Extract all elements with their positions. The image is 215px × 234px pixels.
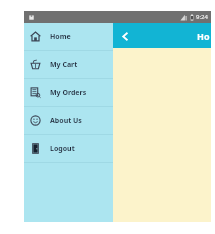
- button[interactable]: About Us: [24, 107, 113, 134]
- button[interactable]: My Orders: [24, 79, 113, 106]
- staticText: About Us: [50, 116, 82, 126]
- button[interactable]: My Cart: [24, 51, 113, 78]
- staticText: Logout: [50, 144, 75, 154]
- staticText: 9:24: [196, 13, 208, 21]
- staticText: Home: [50, 32, 71, 42]
- button[interactable]: Back: [117, 28, 133, 44]
- staticText: My Orders: [50, 88, 87, 98]
- button[interactable]: Logout: [24, 135, 113, 162]
- staticText: Ho: [197, 30, 210, 42]
- button[interactable]: Home: [24, 23, 113, 50]
- staticText: My Cart: [50, 60, 78, 70]
